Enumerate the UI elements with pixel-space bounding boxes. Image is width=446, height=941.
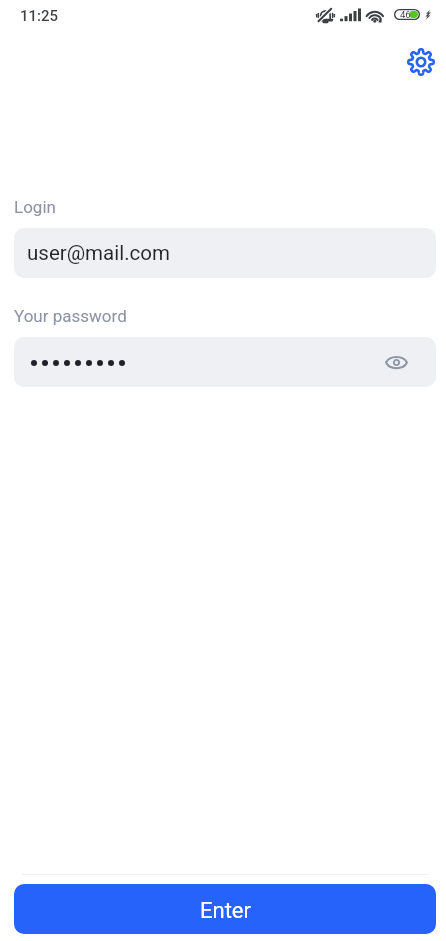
staticText: Login bbox=[14, 197, 56, 217]
button[interactable]: Show password bbox=[14, 337, 436, 387]
staticText: Enter bbox=[200, 898, 251, 924]
button[interactable]: Settings bbox=[400, 41, 441, 82]
staticText: user@mail.com bbox=[27, 241, 171, 265]
button[interactable]: user@mail.com bbox=[14, 228, 436, 278]
staticText: 11:25 bbox=[20, 7, 59, 25]
staticText: 46 bbox=[400, 9, 411, 20]
button[interactable]: Show password bbox=[378, 344, 414, 380]
button[interactable]: Enter bbox=[14, 884, 436, 934]
staticText: Your password bbox=[14, 306, 127, 326]
